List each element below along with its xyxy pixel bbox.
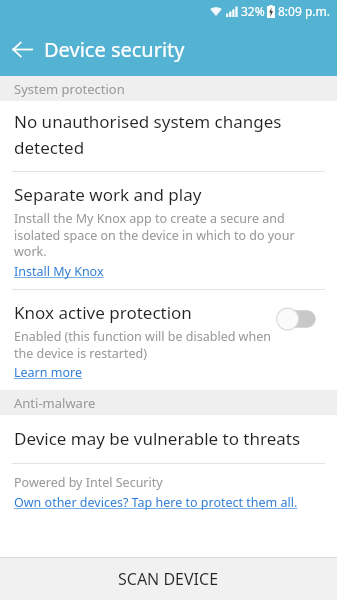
staticText: SCAN DEVICE bbox=[118, 568, 219, 590]
staticText: System protection bbox=[14, 80, 125, 98]
button[interactable]: Own other devices? Tap here to protect t… bbox=[14, 494, 298, 511]
button[interactable]: Install My Knox bbox=[14, 263, 104, 280]
button[interactable]: No unauthorised system changes detected bbox=[0, 101, 337, 171]
staticText: Enabled (this function will be disabled … bbox=[14, 328, 271, 361]
staticText: 8:09 p.m. bbox=[278, 3, 330, 19]
button[interactable]: Learn more bbox=[14, 364, 82, 381]
button[interactable]: Knox active protection toggle bbox=[277, 305, 325, 333]
staticText: Device security bbox=[44, 36, 185, 63]
button[interactable]: SCAN DEVICE bbox=[0, 558, 337, 600]
button[interactable]: Back bbox=[0, 27, 44, 71]
staticText: Install the My Knox app to create a secu… bbox=[14, 210, 295, 259]
staticText: Anti-malware bbox=[14, 394, 96, 412]
staticText: 32% bbox=[241, 3, 265, 19]
button[interactable]: Separate work and play bbox=[0, 172, 337, 289]
staticText: No unauthorised system changes detected bbox=[14, 110, 282, 159]
staticText: Separate work and play bbox=[14, 183, 202, 206]
staticText: Device may be vulnerable to threats bbox=[14, 427, 301, 450]
staticText: Knox active protection bbox=[14, 301, 192, 324]
button[interactable]: Device may be vulnerable to threats bbox=[0, 415, 337, 463]
button[interactable]: Knox active protection bbox=[0, 290, 337, 390]
staticText: Powered by Intel Security bbox=[14, 474, 163, 491]
